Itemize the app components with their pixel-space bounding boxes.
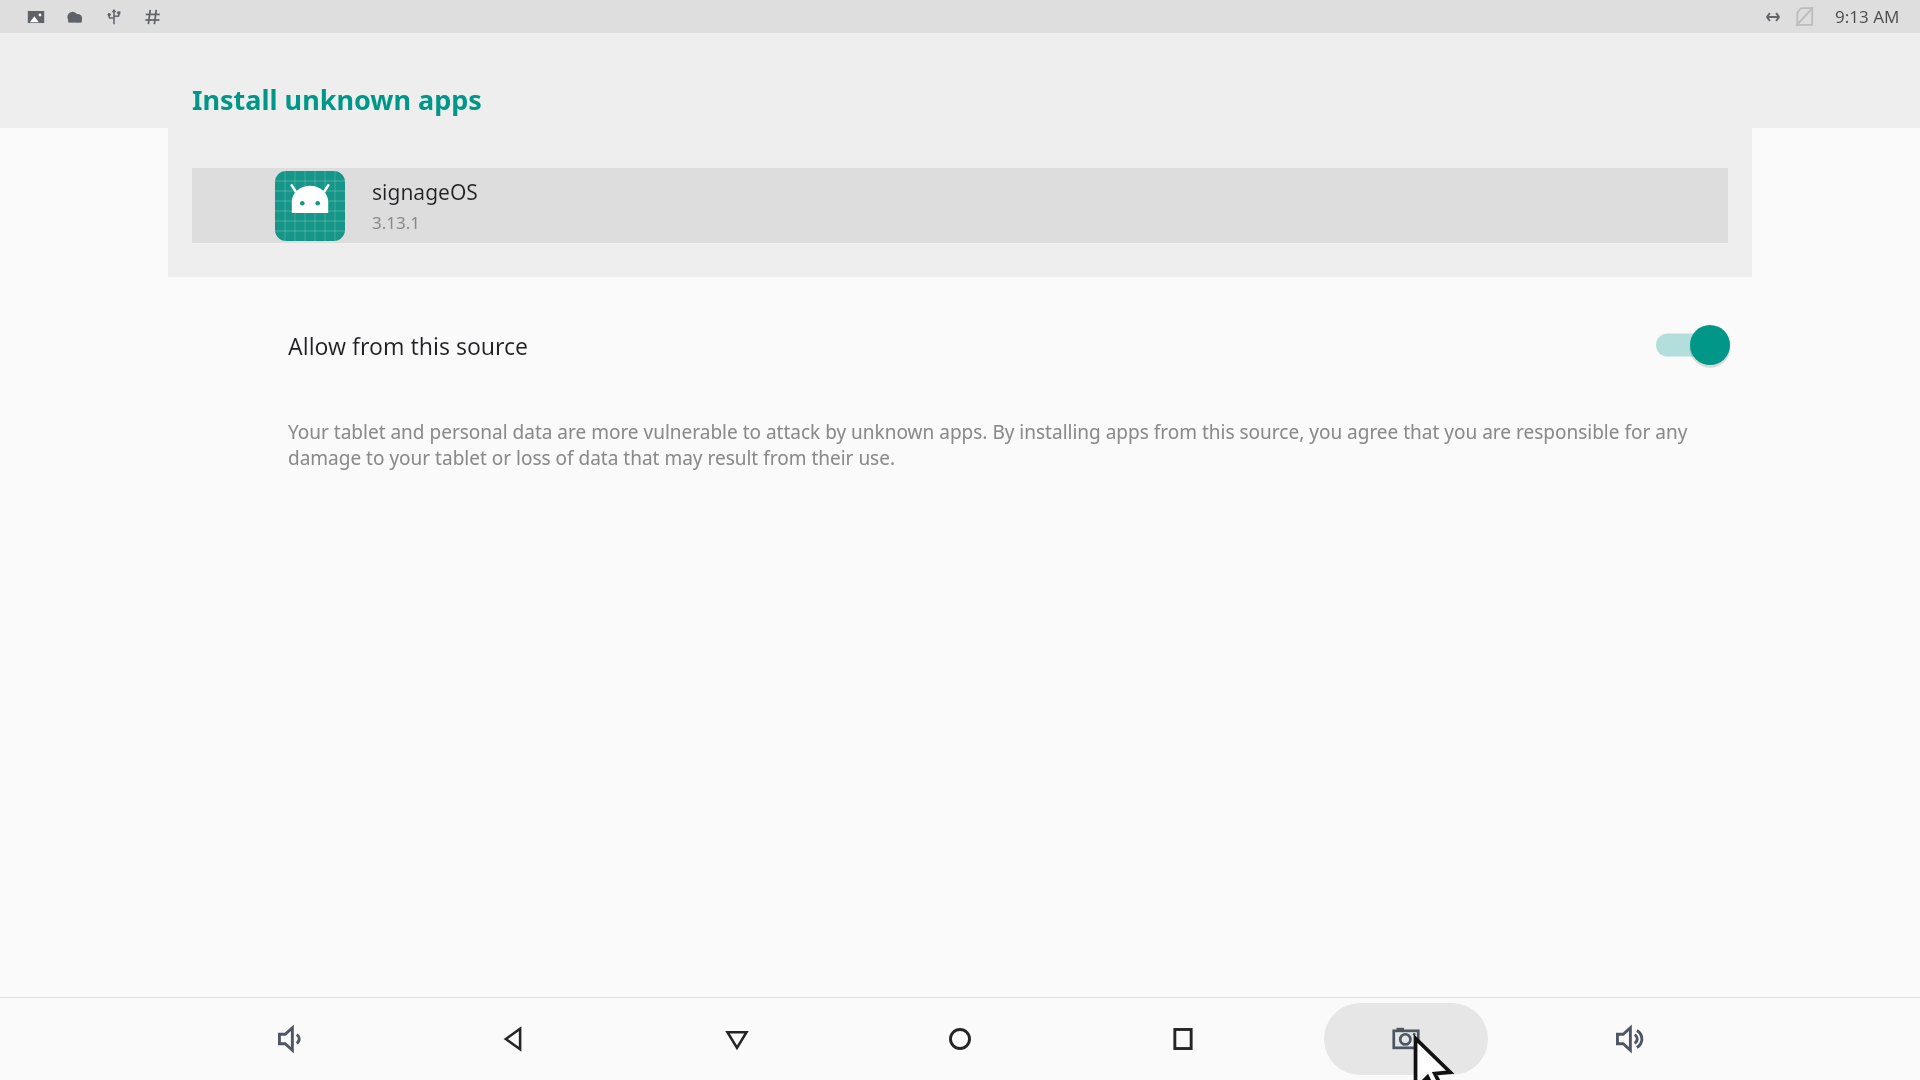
staticText: 3.13.1 <box>372 211 421 234</box>
button[interactable]: Hide keyboard <box>625 997 848 1080</box>
button[interactable]: Recent apps <box>1071 997 1294 1080</box>
button[interactable]: signageOS <box>192 168 1728 243</box>
staticText: 9:13 AM <box>1835 5 1900 28</box>
staticText: signageOS <box>372 178 478 207</box>
staticText: Allow from this source <box>288 330 529 361</box>
button[interactable]: Volume down <box>180 997 402 1080</box>
staticText: Your tablet and personal data are more v… <box>288 419 1720 470</box>
button[interactable]: Back <box>402 997 625 1080</box>
other: Allow from this source toggle <box>1656 325 1730 365</box>
button[interactable]: Volume up <box>1517 997 1740 1080</box>
button[interactable]: Home <box>848 997 1071 1080</box>
button[interactable]: Screenshot <box>1294 997 1517 1080</box>
staticText: Install unknown apps <box>192 81 482 118</box>
button[interactable]: Allow from this source <box>0 313 1920 377</box>
